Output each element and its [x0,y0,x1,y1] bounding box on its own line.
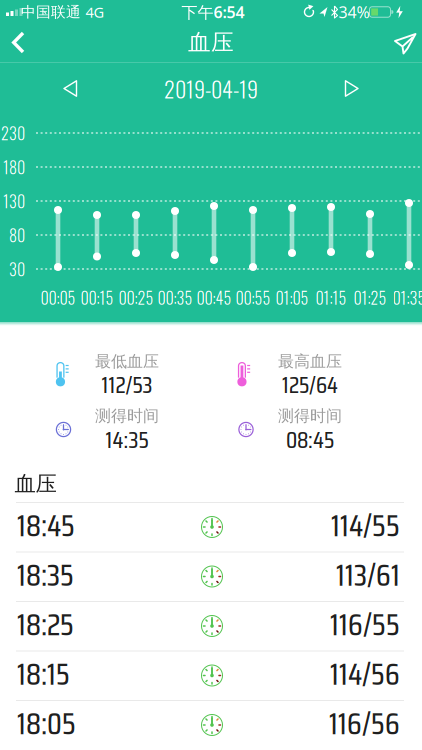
staticText: 113/61 [336,551,400,599]
staticText: 血压 [14,471,56,497]
staticText: 测得时间 [95,406,159,426]
staticText: 130 [3,189,25,213]
staticText: 01:35 [392,286,422,309]
staticText: 230 [1,121,25,145]
staticText: 00:15 [80,286,113,309]
staticText: 34% [338,1,369,23]
staticText: 01:15 [315,286,346,309]
staticText: 18:15 [17,650,70,698]
staticText: 00:35 [157,286,192,309]
staticText: 2019-04-19 [164,72,258,105]
staticText: 中国联通 [21,3,81,21]
button[interactable]: Previous day [63,80,78,97]
staticText: 最高血压 [278,352,342,371]
staticText: 血压 [188,29,234,56]
staticText: 18:35 [17,551,74,599]
staticText: 00:25 [118,286,153,309]
button[interactable]: Back [0,20,44,64]
staticText: 01:05 [275,286,308,309]
staticText: 01:25 [353,286,386,309]
staticText: 80 [9,223,25,247]
staticText: 最低血压 [95,352,159,371]
staticText: 08:45 [286,422,334,458]
staticText: 125/64 [282,367,338,403]
staticText: 116/55 [330,600,400,649]
staticText: 116/56 [329,699,400,748]
staticText: 18:45 [17,501,75,550]
staticText: 00:05 [40,286,75,309]
staticText: 18:05 [17,699,76,748]
staticText: 00:45 [196,286,231,309]
staticText: 114/56 [330,650,400,698]
staticText: 112/53 [101,367,152,403]
staticText: 4G [85,2,104,22]
staticText: 30 [9,257,25,281]
button[interactable]: Next day [344,80,359,97]
staticText: 测得时间 [278,406,342,426]
staticText: 114/55 [331,501,400,550]
staticText: 18:25 [17,600,74,649]
button[interactable]: Share [392,31,418,55]
staticText: 下午6:54 [181,1,244,23]
staticText: 180 [3,155,25,179]
staticText: 00:55 [235,286,270,309]
staticText: 14:35 [105,422,148,458]
